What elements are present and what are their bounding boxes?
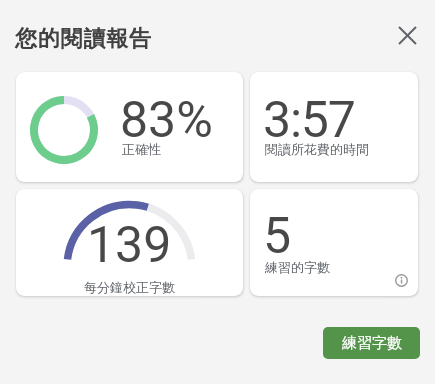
staticText: 139 <box>87 216 172 275</box>
staticText: 練習字數 <box>342 334 402 353</box>
staticText: 5 <box>263 207 292 266</box>
staticText: 練習的字數 <box>265 259 330 275</box>
button[interactable] <box>392 20 422 50</box>
button[interactable]: 練習字數 <box>323 327 420 359</box>
staticText: 3:57 <box>263 91 355 150</box>
staticText: 83% <box>120 91 213 150</box>
staticText: 正確性 <box>122 141 161 157</box>
staticText: 每分鐘校正字數 <box>84 279 175 295</box>
button[interactable] <box>389 268 414 293</box>
staticText: 您的閱讀報告 <box>15 25 152 53</box>
staticText: 閱讀所花費的時間 <box>265 141 369 157</box>
